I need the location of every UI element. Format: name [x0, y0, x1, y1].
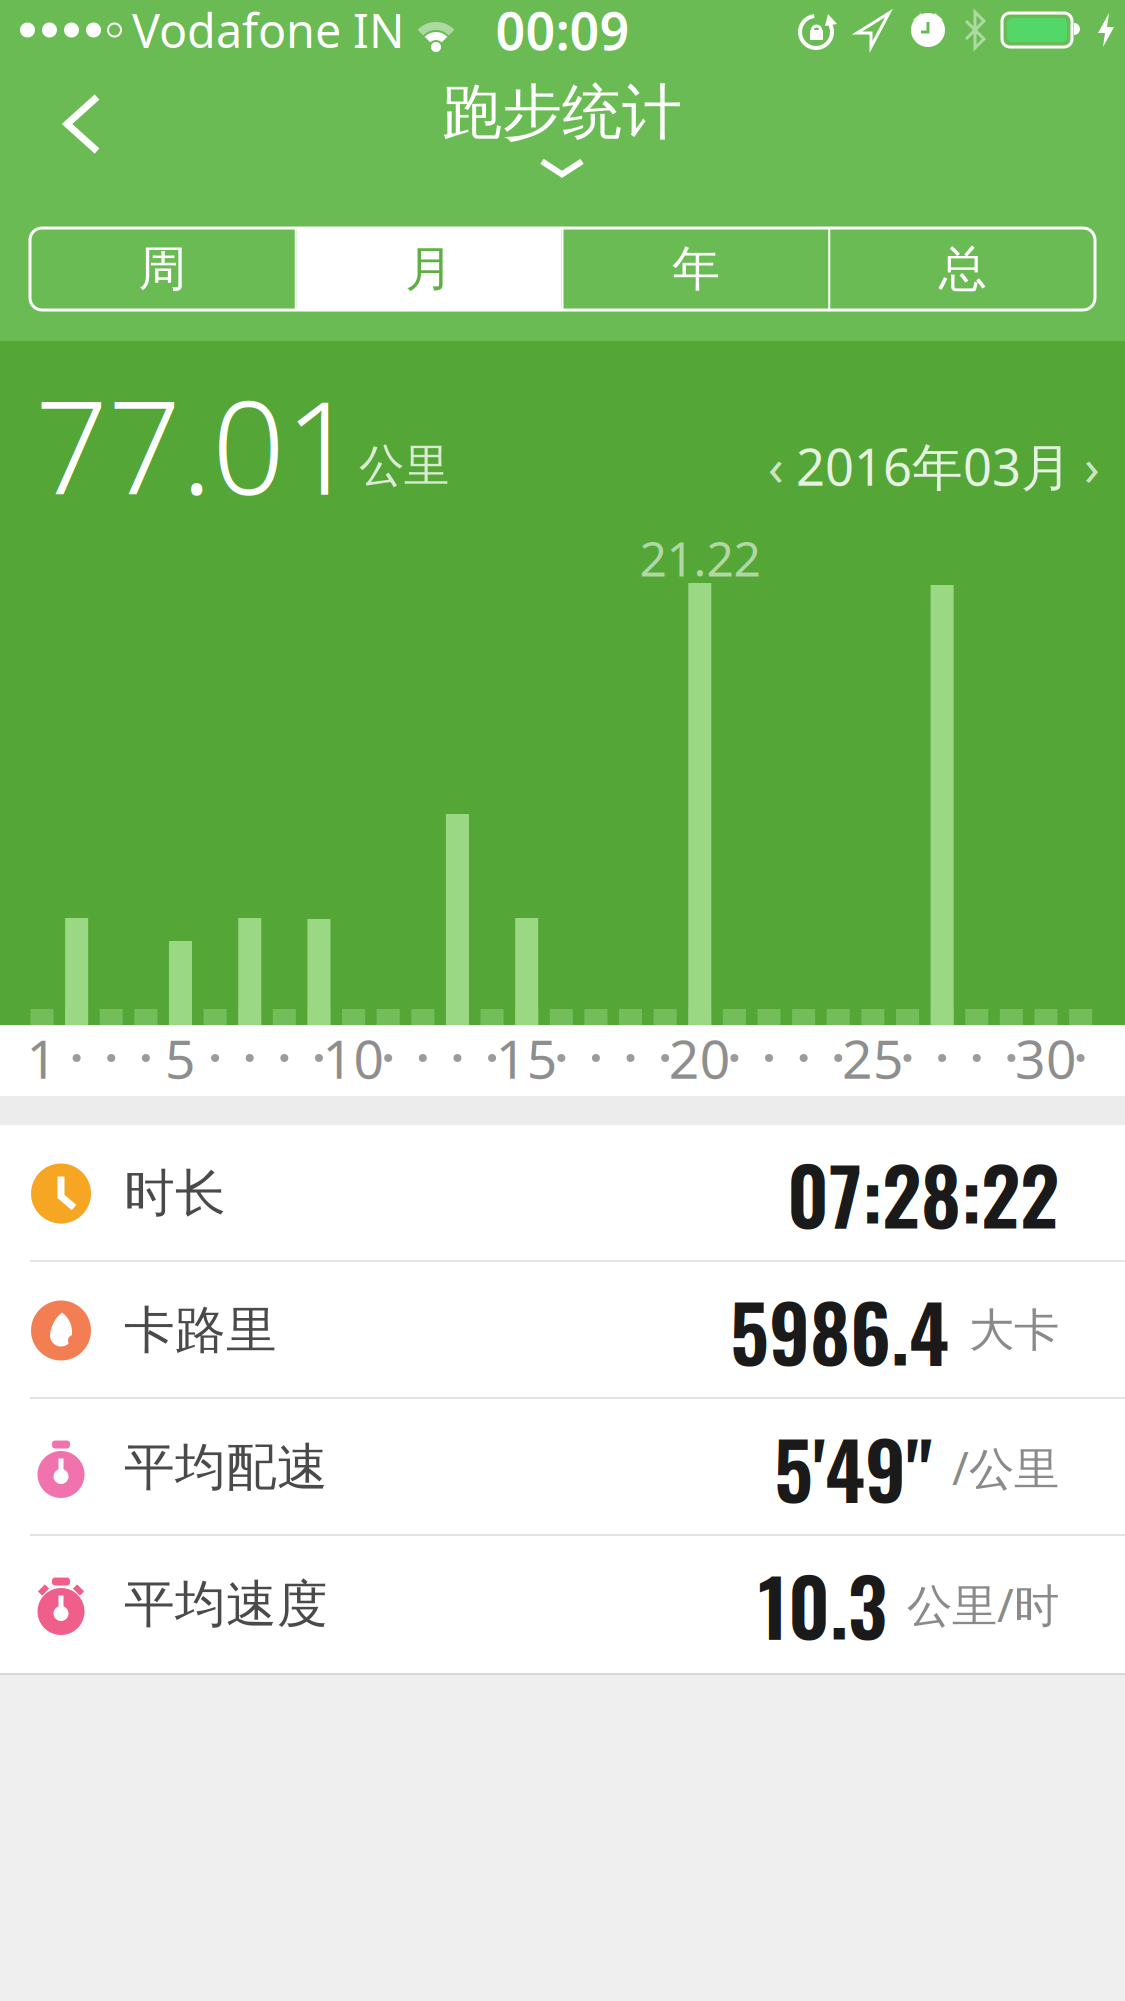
staticText: 平均配速	[124, 1436, 328, 1499]
staticText: 5	[165, 1023, 196, 1093]
staticText: 10	[323, 1023, 385, 1093]
staticText: Vodafone IN	[132, 0, 404, 61]
button[interactable]: 年	[563, 228, 828, 310]
staticText: 21.22	[639, 526, 760, 590]
staticText: 77.01	[35, 360, 358, 530]
staticText: 5986.4	[730, 1273, 949, 1388]
staticText: /公里	[952, 1437, 1059, 1498]
button[interactable]: 时长	[0, 1125, 1125, 1262]
staticText: 卡路里	[124, 1299, 277, 1362]
staticText: 周	[138, 239, 186, 298]
staticText: 10.3	[758, 1547, 887, 1662]
staticText: 07:28:22	[787, 1136, 1059, 1251]
staticText: ›	[1084, 432, 1100, 500]
staticText: 公里/时	[907, 1574, 1059, 1635]
staticText: 时长	[124, 1162, 226, 1225]
staticText: 平均速度	[124, 1573, 328, 1636]
staticText: 15	[496, 1023, 558, 1093]
button[interactable]: 月	[297, 228, 562, 310]
button[interactable]: 总	[830, 228, 1095, 310]
staticText: 大卡	[969, 1303, 1059, 1358]
staticText: 2016年03月	[796, 432, 1072, 500]
staticText: ‹	[768, 432, 784, 500]
button[interactable]: 周	[30, 228, 295, 310]
staticText: 跑步统计	[442, 76, 682, 149]
staticText: 25	[842, 1023, 904, 1093]
button[interactable]: 平均配速	[0, 1399, 1125, 1536]
staticText: 总	[939, 239, 987, 298]
button[interactable]: 平均速度	[0, 1536, 1125, 1673]
button[interactable]: ‹	[768, 432, 1100, 500]
staticText: 月	[405, 239, 453, 298]
staticText: 年	[672, 239, 720, 298]
staticText: 1	[26, 1023, 57, 1093]
button[interactable]: 卡路里	[0, 1262, 1125, 1399]
staticText: 公里	[359, 438, 449, 494]
staticText: 00:09	[495, 0, 629, 65]
staticText: 20	[669, 1023, 731, 1093]
staticText: 5'49"	[774, 1410, 932, 1525]
staticText: 30	[1015, 1023, 1077, 1093]
button[interactable]: 跑步统计	[442, 76, 682, 176]
button[interactable]	[61, 93, 103, 155]
